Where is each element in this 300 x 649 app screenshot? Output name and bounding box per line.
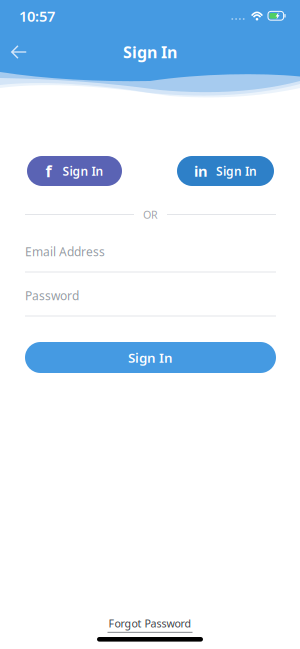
button[interactable]: Forgot Password [103,616,196,633]
button[interactable]: in [177,156,274,186]
staticText: Sign In [123,41,177,63]
button[interactable]: f [27,156,122,186]
staticText: Forgot Password [108,616,191,630]
button[interactable]: Sign In [25,342,276,373]
staticText: Password [25,287,79,303]
staticText: Email Address [25,243,105,259]
button[interactable]: Back [4,37,34,66]
staticText: f [45,160,51,182]
staticText: Sign In [128,349,173,366]
staticText: 10:57 [19,6,55,26]
staticText: in [194,161,208,181]
staticText: Sign In [216,163,257,179]
staticText: OR [143,207,158,222]
staticText: Sign In [62,163,103,179]
